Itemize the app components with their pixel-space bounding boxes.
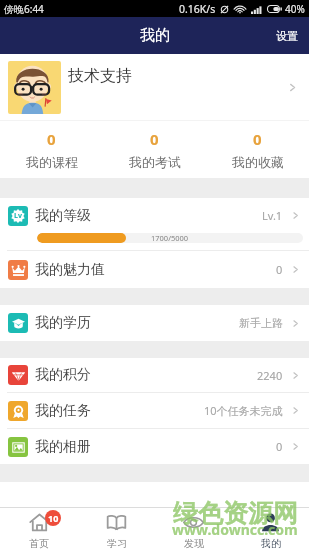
staticText: 设置 <box>276 29 298 43</box>
other: Home <box>29 512 50 533</box>
staticText: 10 <box>48 512 59 524</box>
button[interactable]: Discover <box>155 508 232 550</box>
button[interactable]: 0 <box>103 121 206 178</box>
staticText: 我的任务 <box>35 402 91 420</box>
staticText: Lv.1 <box>262 208 283 223</box>
staticText: 0 <box>276 439 283 454</box>
staticText: 我的考试 <box>129 154 181 170</box>
staticText: 技术支持 <box>68 66 132 86</box>
staticText: 我的等级 <box>35 207 91 225</box>
button[interactable]: 我的学历 <box>0 305 309 341</box>
staticText: 我的相册 <box>35 438 91 456</box>
staticText: 0 <box>276 262 283 277</box>
other: More <box>290 441 301 452</box>
other: Mine <box>260 512 281 533</box>
staticText: 傍晚6:44 <box>4 2 44 16</box>
staticText: www.downcc.com <box>172 520 298 539</box>
button[interactable]: 我的任务 <box>0 393 309 428</box>
other: Discover <box>183 512 204 533</box>
staticText: 我的积分 <box>35 366 91 384</box>
staticText: 0 <box>150 129 159 149</box>
staticText: 40% <box>285 2 305 16</box>
staticText: 我的 <box>261 537 281 550</box>
staticText: 0.16K/s <box>179 2 216 16</box>
button[interactable]: Study <box>78 508 155 550</box>
staticText: 学习 <box>107 537 127 550</box>
button[interactable]: 设置 <box>265 17 309 54</box>
staticText: 发现 <box>184 537 204 550</box>
other: More <box>290 210 301 221</box>
other: Study <box>106 512 127 533</box>
button[interactable]: 0 <box>0 121 103 178</box>
staticText: 我的 <box>140 26 170 45</box>
staticText: 我的课程 <box>26 154 78 170</box>
button[interactable]: Mine <box>232 508 309 550</box>
staticText: 0 <box>47 129 56 149</box>
staticText: Lv <box>14 211 22 221</box>
other: More <box>290 264 301 275</box>
other: More <box>290 370 301 381</box>
other: More <box>286 81 299 94</box>
button[interactable]: 我的相册 <box>0 429 309 464</box>
button[interactable]: Home <box>0 508 78 550</box>
button[interactable]: 我的魅力值 <box>0 251 309 288</box>
button[interactable]: 我的积分 <box>0 358 309 392</box>
staticText: 10个任务未完成 <box>204 403 283 418</box>
staticText: 首页 <box>29 537 49 550</box>
staticText: 我的收藏 <box>232 154 284 170</box>
staticText: 新手上路 <box>239 316 283 330</box>
other: More <box>290 318 301 329</box>
button[interactable]: 0 <box>206 121 309 178</box>
button[interactable]: 技术支持 <box>0 54 309 120</box>
staticText: 2240 <box>257 368 283 383</box>
staticText: 绿色资源网 <box>173 498 298 529</box>
staticText: 0 <box>253 129 262 149</box>
staticText: 我的学历 <box>35 314 91 332</box>
staticText: 我的魅力值 <box>35 261 105 279</box>
staticText: 1700/5000 <box>151 233 189 243</box>
other: More <box>290 405 301 416</box>
button[interactable]: Lv <box>0 198 309 250</box>
